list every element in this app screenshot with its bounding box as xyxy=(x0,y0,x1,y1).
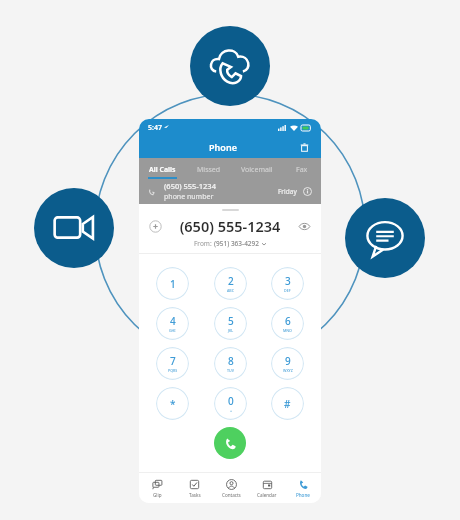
staticText: Phone xyxy=(149,141,297,153)
staticText: PQRS xyxy=(168,368,178,373)
staticText: (650) 555-1234 xyxy=(164,181,216,191)
button[interactable]: Feature xyxy=(190,26,270,106)
staticText: Voicemail xyxy=(241,165,273,175)
button[interactable]: Phone xyxy=(285,473,321,503)
button[interactable]: 5 xyxy=(214,307,247,340)
button[interactable]: Call xyxy=(214,427,246,459)
staticText: 1 xyxy=(170,277,176,291)
button[interactable]: Hide number xyxy=(298,220,311,233)
staticText: Glip xyxy=(153,492,162,498)
button[interactable]: 7 xyxy=(156,347,189,380)
staticText: Fax xyxy=(296,165,308,175)
staticText: + xyxy=(230,408,233,413)
button[interactable]: 0 xyxy=(214,387,247,420)
staticText: From: xyxy=(194,239,214,248)
staticText: MNO xyxy=(283,328,292,333)
staticText: 8 xyxy=(228,354,234,368)
staticText: Calendar xyxy=(257,492,277,498)
button[interactable]: Contacts xyxy=(213,473,249,503)
button[interactable]: Missed xyxy=(186,158,232,179)
button[interactable]: Delete xyxy=(297,140,311,154)
staticText: WXYZ xyxy=(283,368,293,373)
staticText: 0 xyxy=(228,394,234,408)
button[interactable]: 4 xyxy=(156,307,189,340)
staticText: (650) 555-1234 xyxy=(162,216,298,236)
button[interactable]: 8 xyxy=(214,347,247,380)
button[interactable]: * xyxy=(156,387,189,420)
button[interactable]: Calendar xyxy=(249,473,285,503)
button[interactable]: All Calls xyxy=(139,158,186,179)
button[interactable]: 9 xyxy=(271,347,304,380)
button[interactable]: Feature xyxy=(34,188,114,268)
button[interactable]: Feature xyxy=(345,198,425,278)
staticText: phone number xyxy=(164,192,214,202)
button[interactable]: 2 xyxy=(214,267,247,300)
staticText: # xyxy=(284,397,291,411)
button[interactable]: Tasks xyxy=(176,473,213,503)
staticText: 6 xyxy=(285,314,291,328)
staticText: ABC xyxy=(227,288,234,293)
button[interactable]: 1 xyxy=(156,267,189,300)
button[interactable]: Add contact xyxy=(149,220,162,233)
staticText: 4 xyxy=(170,314,176,328)
button[interactable]: 3 xyxy=(271,267,304,300)
button[interactable]: # xyxy=(271,387,304,420)
staticText: TUV xyxy=(227,368,234,373)
staticText: GHI xyxy=(169,328,176,333)
staticText: DEF xyxy=(284,288,291,293)
staticText: All Calls xyxy=(149,165,176,175)
staticText: 5 xyxy=(228,314,234,328)
staticText: 3 xyxy=(285,274,291,288)
staticText: JKL xyxy=(228,328,234,333)
staticText: Phone xyxy=(296,492,310,498)
button[interactable]: (650) 555-1234 xyxy=(139,179,321,204)
staticText: 5:47 xyxy=(148,123,162,133)
staticText: Missed xyxy=(197,165,221,175)
staticText: Tasks xyxy=(189,492,201,498)
staticText: (951) 363-4292 xyxy=(214,239,260,248)
button[interactable]: 6 xyxy=(271,307,304,340)
button[interactable]: Fax xyxy=(282,158,321,179)
staticText: Friday xyxy=(278,187,297,196)
staticText: Contacts xyxy=(222,492,241,498)
staticText: 2 xyxy=(228,274,234,288)
staticText: 7 xyxy=(170,354,176,368)
button[interactable]: Glip xyxy=(139,473,176,503)
button[interactable]: Voicemail xyxy=(232,158,282,179)
staticText: * xyxy=(170,397,176,411)
staticText: 9 xyxy=(285,354,291,368)
button[interactable]: Call info xyxy=(303,187,312,196)
